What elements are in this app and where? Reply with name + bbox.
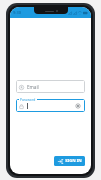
button[interactable]: Show password bbox=[74, 102, 82, 110]
staticText: 9:30 bbox=[13, 10, 21, 15]
staticText: Password bbox=[20, 97, 36, 102]
staticText: SIGN IN bbox=[65, 158, 82, 164]
button[interactable]: Email bbox=[16, 80, 85, 93]
staticText: Email bbox=[27, 84, 39, 90]
button[interactable]: Show password bbox=[16, 99, 85, 112]
button[interactable]: SIGN IN bbox=[54, 156, 85, 166]
